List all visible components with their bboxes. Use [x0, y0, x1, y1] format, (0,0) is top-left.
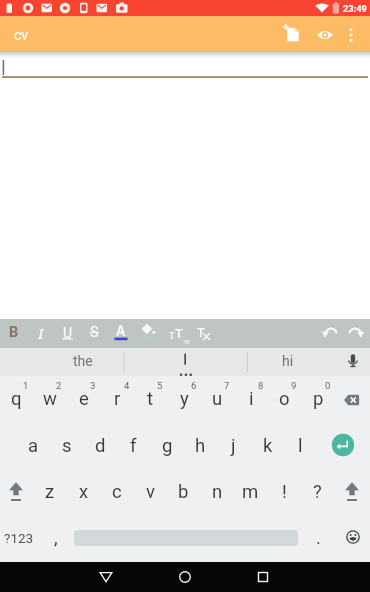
button[interactable] — [0, 348, 123, 376]
button[interactable]: s — [50, 423, 83, 469]
button[interactable] — [337, 514, 369, 560]
button[interactable]: g — [151, 423, 184, 469]
staticText: 3 — [90, 380, 96, 391]
staticText: B — [9, 324, 19, 341]
staticText: y — [180, 388, 189, 410]
staticText: s — [62, 435, 72, 457]
button[interactable] — [0, 469, 32, 515]
button[interactable] — [135, 318, 161, 342]
staticText: T — [169, 331, 175, 342]
button[interactable]: r — [101, 376, 134, 422]
button[interactable]: B — [1, 318, 27, 347]
staticText: g — [162, 435, 173, 457]
button[interactable]: p — [302, 376, 335, 422]
button[interactable]: o — [268, 376, 301, 422]
staticText: ?123 — [4, 530, 34, 546]
button[interactable] — [323, 422, 363, 468]
staticText: c — [112, 481, 122, 503]
button[interactable]: h — [184, 423, 217, 469]
button[interactable]: T — [163, 319, 191, 348]
staticText: 23:49 — [343, 3, 367, 14]
button[interactable]: a — [17, 423, 50, 469]
button[interactable]: y — [168, 376, 201, 422]
button[interactable]: q — [0, 376, 33, 422]
staticText: m — [242, 481, 259, 503]
button[interactable]: S — [81, 318, 107, 347]
staticText: i — [249, 388, 254, 410]
button[interactable]: ? — [301, 469, 334, 515]
staticText: o — [279, 388, 290, 410]
staticText: 7 — [224, 380, 230, 391]
button[interactable]: l — [284, 423, 317, 469]
button[interactable]: . — [303, 515, 333, 561]
button[interactable]: j — [217, 423, 250, 469]
button[interactable]: c — [100, 469, 133, 515]
staticText: b — [178, 481, 189, 503]
button[interactable]: w — [33, 376, 66, 422]
staticText: d — [95, 435, 106, 457]
button[interactable]: x — [67, 469, 100, 515]
button[interactable] — [338, 18, 364, 52]
staticText: v — [146, 481, 155, 503]
button[interactable] — [317, 318, 345, 347]
staticText: U — [63, 325, 73, 341]
staticText: cv — [14, 27, 29, 43]
staticText: . — [316, 527, 321, 549]
button[interactable]: ?123 — [0, 515, 38, 561]
button[interactable] — [309, 18, 341, 52]
button[interactable]: ! — [268, 469, 301, 515]
button[interactable] — [336, 469, 368, 515]
staticText: t — [147, 388, 154, 410]
staticText: 9 — [291, 380, 297, 391]
button[interactable] — [338, 347, 368, 375]
staticText: z — [45, 481, 55, 503]
staticText: 70 — [183, 338, 190, 345]
staticText: S — [90, 324, 99, 341]
button[interactable]: n — [201, 469, 234, 515]
button[interactable]: d — [84, 423, 117, 469]
button[interactable]: m — [234, 469, 267, 515]
staticText: a — [28, 435, 39, 457]
staticText: h — [195, 435, 206, 457]
button[interactable]: t — [134, 376, 167, 422]
button[interactable]: e — [67, 376, 100, 422]
staticText: w — [43, 388, 57, 410]
staticText: 0 — [325, 380, 331, 391]
staticText: p — [313, 388, 324, 410]
button[interactable] — [241, 562, 285, 592]
button[interactable]: A — [108, 318, 134, 344]
button[interactable]: i — [235, 376, 268, 422]
staticText: e — [79, 388, 89, 410]
staticText: , — [54, 527, 58, 549]
staticText: 8 — [258, 380, 264, 391]
staticText: r — [114, 388, 121, 410]
staticText: n — [212, 481, 223, 503]
staticText: q — [11, 388, 22, 410]
button[interactable] — [248, 348, 336, 376]
button[interactable]: u — [201, 376, 234, 422]
button[interactable] — [124, 348, 247, 376]
staticText: f — [130, 435, 137, 457]
button[interactable]: f — [117, 423, 150, 469]
button[interactable] — [163, 562, 207, 592]
button[interactable]: I — [28, 318, 54, 347]
button[interactable] — [341, 318, 369, 347]
staticText: T — [175, 326, 183, 341]
button[interactable]: T — [190, 319, 216, 348]
button[interactable]: k — [251, 423, 284, 469]
button[interactable] — [84, 562, 128, 592]
staticText: hi — [282, 353, 294, 369]
button[interactable]: v — [134, 469, 167, 515]
button[interactable]: z — [33, 469, 66, 515]
button[interactable]: , — [41, 515, 71, 561]
button[interactable] — [333, 377, 370, 423]
button[interactable]: b — [167, 469, 200, 515]
staticText: 2 — [56, 380, 62, 391]
staticText: x — [79, 481, 89, 503]
button[interactable] — [277, 17, 309, 51]
staticText: T — [197, 325, 205, 340]
button[interactable]: U — [55, 318, 81, 347]
staticText: j — [231, 435, 236, 457]
staticText: u — [212, 388, 223, 410]
